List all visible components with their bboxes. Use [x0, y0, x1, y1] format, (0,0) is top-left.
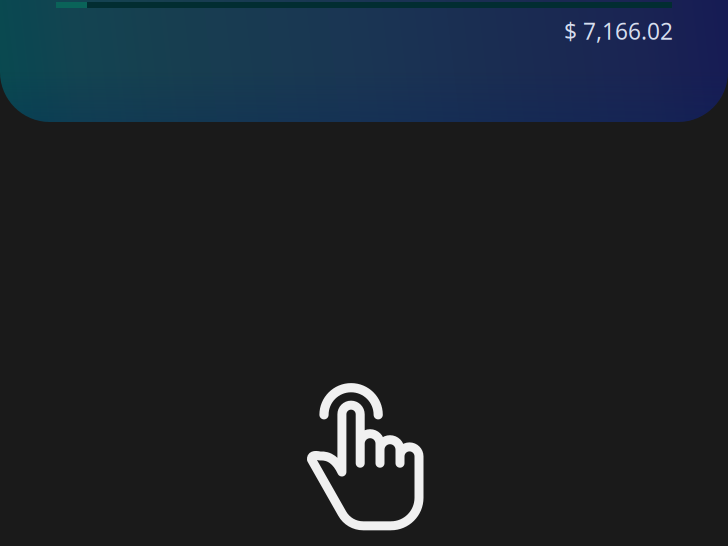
- staticText: $ 7,166.02: [564, 16, 673, 46]
